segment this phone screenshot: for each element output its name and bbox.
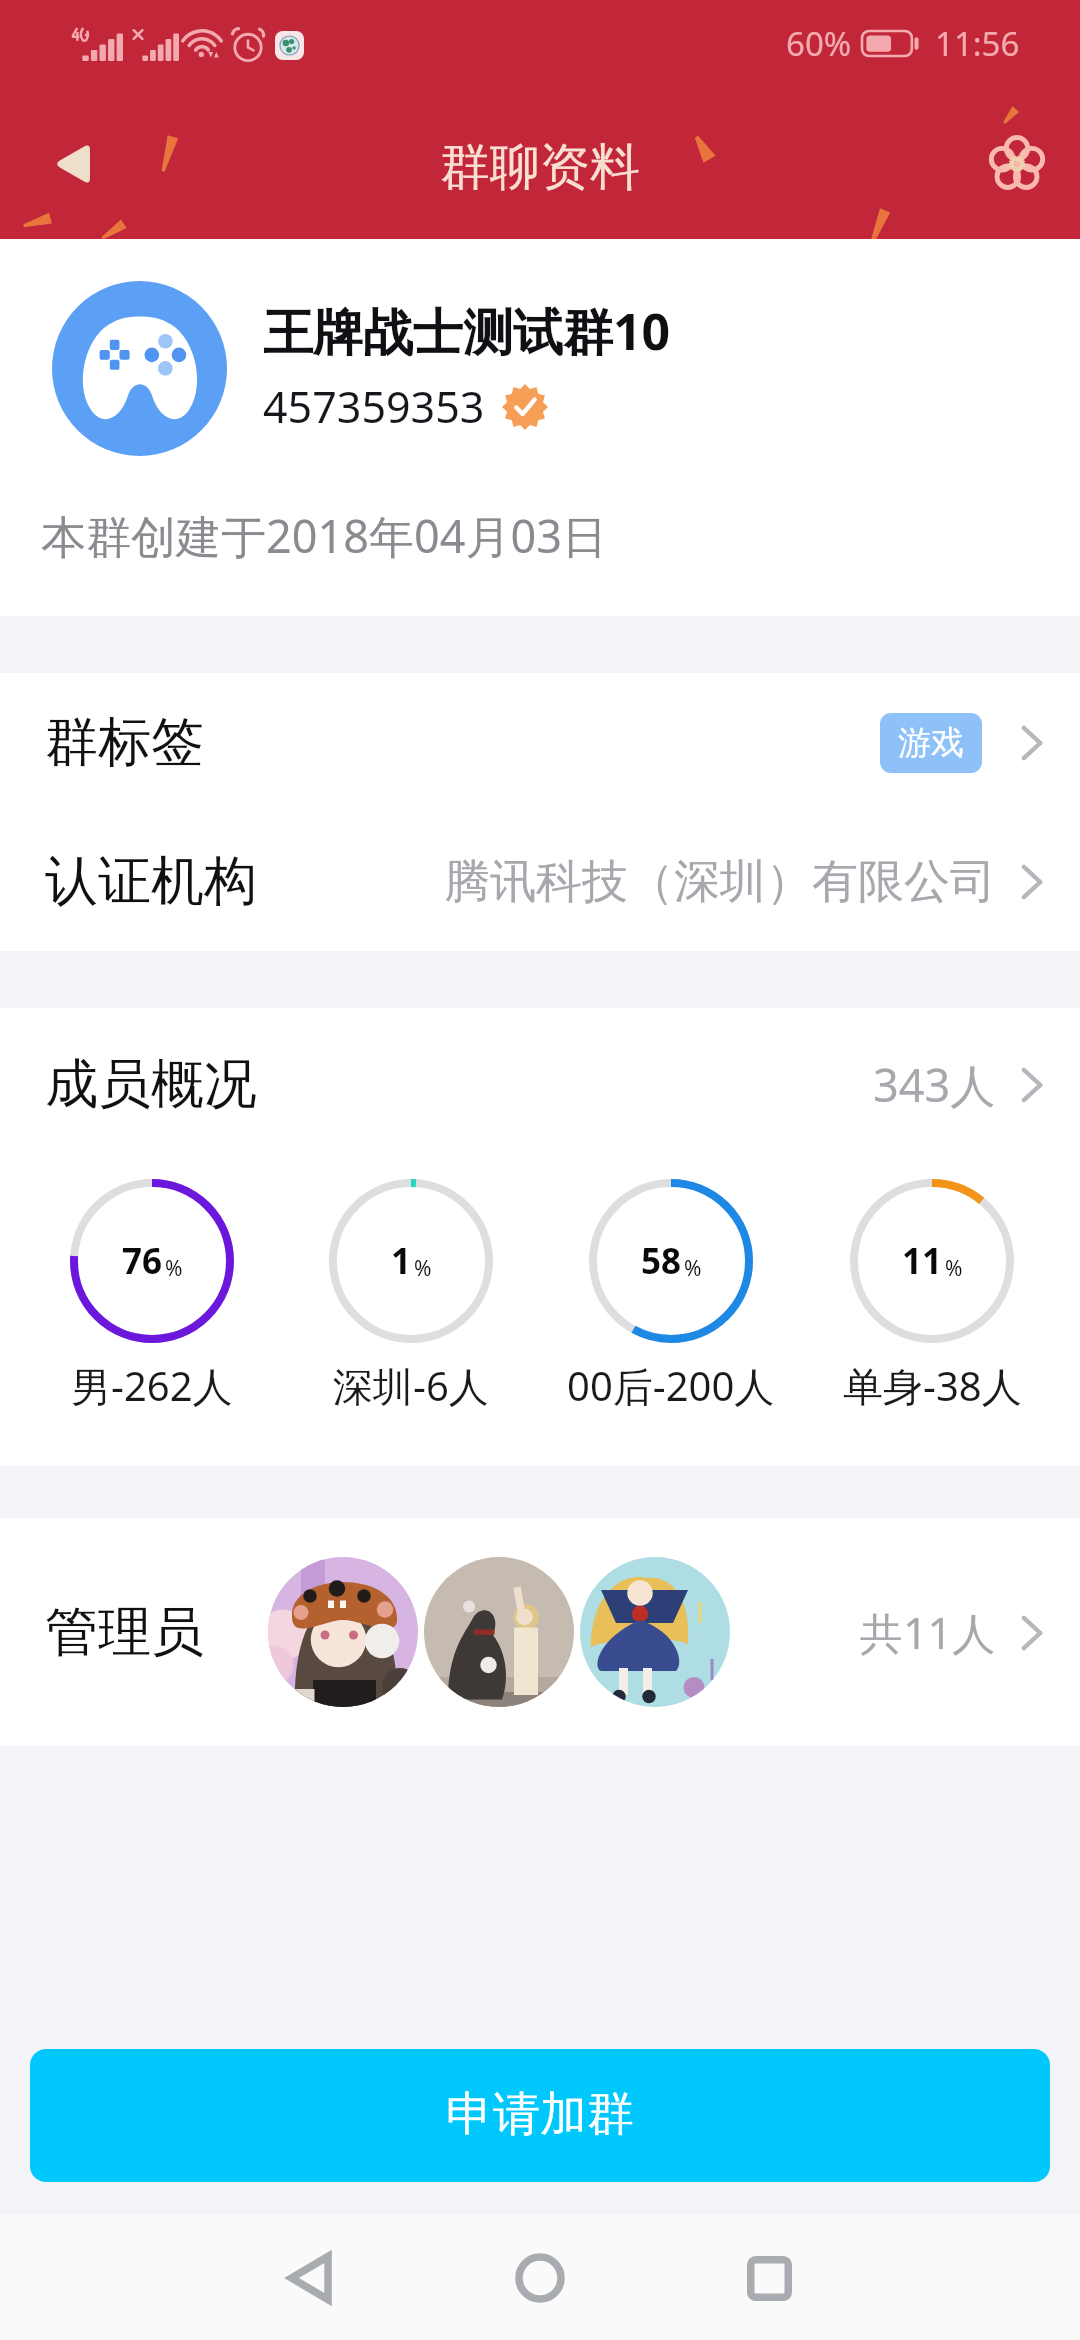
- staticText: 群标签: [45, 709, 204, 776]
- staticText: 男-262人: [71, 1358, 233, 1413]
- staticText: 1: [391, 1237, 412, 1285]
- staticText: 60%: [786, 21, 852, 66]
- button[interactable]: 成员概况: [0, 1008, 1080, 1160]
- button[interactable]: Admin 2: [424, 1557, 574, 1707]
- staticText: 游戏: [898, 722, 964, 764]
- staticText: 群聊资料: [440, 136, 640, 199]
- button[interactable]: Admin 1: [268, 1557, 418, 1707]
- staticText: 深圳-6人: [333, 1358, 489, 1413]
- staticText: 11: [902, 1237, 943, 1285]
- button[interactable]: Back: [262, 2230, 358, 2326]
- staticText: %: [945, 1254, 963, 1283]
- staticText: 认证机构: [45, 848, 257, 915]
- button[interactable]: Recents: [721, 2230, 817, 2326]
- staticText: 11:56: [935, 21, 1020, 66]
- button[interactable]: 申请加群: [30, 2049, 1050, 2182]
- staticText: 共11人: [860, 1603, 996, 1662]
- staticText: 58: [641, 1237, 682, 1285]
- staticText: 成员概况: [45, 1051, 257, 1118]
- button[interactable]: 管理员: [0, 1518, 1080, 1746]
- button[interactable]: 认证机构: [0, 812, 1080, 951]
- staticText: 管理员: [45, 1599, 204, 1666]
- button[interactable]: 群标签: [0, 673, 1080, 812]
- button[interactable]: Admin 3: [580, 1557, 730, 1707]
- staticText: 单身-38人: [843, 1358, 1022, 1413]
- staticText: 00后-200人: [567, 1358, 775, 1413]
- staticText: 457359353: [263, 377, 485, 436]
- staticText: 王牌战士测试群10: [263, 297, 671, 365]
- staticText: 343人: [873, 1054, 996, 1115]
- staticText: 申请加群: [446, 2085, 634, 2144]
- staticText: %: [165, 1254, 183, 1283]
- staticText: 76: [122, 1237, 163, 1285]
- staticText: %: [684, 1254, 702, 1283]
- button[interactable]: Home: [492, 2230, 588, 2326]
- button[interactable]: Back: [24, 116, 120, 212]
- staticText: %: [414, 1254, 432, 1283]
- staticText: 本群创建于2018年04月03日: [41, 505, 607, 566]
- staticText: 腾讯科技（深圳）有限公司: [444, 853, 996, 911]
- button[interactable]: Group avatar: [52, 281, 227, 456]
- button[interactable]: Decorations: [969, 116, 1065, 212]
